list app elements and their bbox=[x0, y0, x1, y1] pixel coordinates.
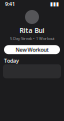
staticText: 5 Day Streak • 1 Workout bbox=[10, 36, 54, 41]
staticText: 9:41 bbox=[5, 0, 15, 8]
staticText: ▮▮▮ bbox=[50, 1, 59, 7]
staticText: Rita Bui bbox=[19, 26, 44, 35]
staticText: New Workout bbox=[15, 46, 48, 53]
staticText: Today bbox=[4, 57, 19, 64]
button[interactable]: New Workout bbox=[4, 45, 60, 54]
